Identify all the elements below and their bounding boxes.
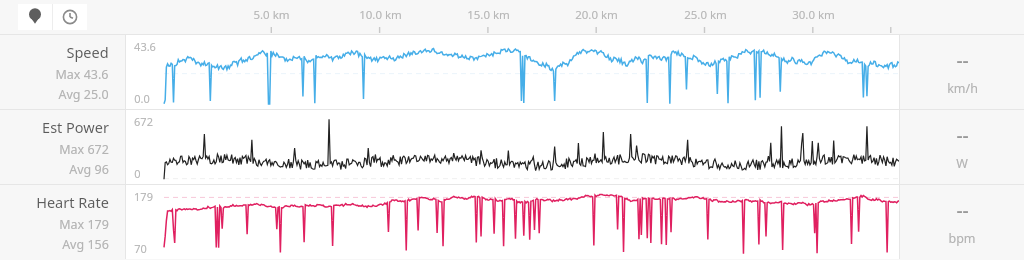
staticText: Max 43.6 — [55, 66, 109, 83]
button[interactable]: Est Power — [0, 110, 125, 184]
staticText: 10.0 km — [359, 7, 402, 23]
staticText: 5.0 km — [253, 7, 290, 23]
staticText: 672 — [134, 114, 153, 129]
staticText: Avg 25.0 — [58, 86, 109, 103]
staticText: -- — [956, 47, 969, 73]
staticText: W — [956, 155, 968, 172]
staticText: Heart Rate — [36, 192, 109, 212]
staticText: 15.0 km — [467, 7, 510, 23]
staticText: -- — [956, 122, 969, 148]
staticText: 20.0 km — [575, 7, 618, 23]
staticText: 70 — [134, 241, 147, 256]
button[interactable]: Heart Rate — [0, 185, 125, 259]
staticText: 179 — [134, 189, 153, 204]
button[interactable]: -- — [900, 185, 1024, 259]
staticText: Max 672 — [59, 141, 109, 158]
staticText: -- — [956, 197, 969, 223]
staticText: Speed — [66, 42, 109, 62]
button[interactable]: Map — [18, 4, 52, 30]
staticText: km/h — [947, 80, 978, 97]
button[interactable]: Time — [53, 4, 87, 30]
staticText: 0.0 — [134, 91, 150, 106]
staticText: 25.0 km — [684, 7, 727, 23]
button[interactable]: -- — [900, 35, 1024, 109]
button[interactable]: Speed — [0, 35, 125, 109]
staticText: Avg 156 — [62, 236, 109, 253]
staticText: 30.0 km — [792, 7, 835, 23]
staticText: bpm — [948, 230, 976, 247]
staticText: 0 — [134, 166, 141, 181]
staticText: Est Power — [42, 117, 109, 137]
staticText: Avg 96 — [69, 161, 109, 178]
button[interactable]: -- — [900, 110, 1024, 184]
staticText: 43.6 — [134, 39, 156, 54]
staticText: Max 179 — [59, 216, 109, 233]
